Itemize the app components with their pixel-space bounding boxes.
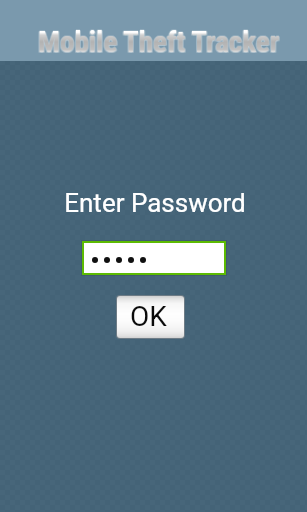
staticText: OK [130, 300, 167, 333]
staticText: Mobile Theft Tracker [39, 26, 281, 60]
staticText: Mobile Theft Tracker [37, 25, 279, 59]
staticText: Enter Password [64, 188, 246, 218]
staticText: Mobile Theft Tracker [39, 25, 281, 59]
staticText: Mobile Theft Tracker [37, 26, 279, 60]
staticText: Mobile Theft Tracker [38, 25, 280, 59]
staticText: Mobile Theft Tracker [38, 24, 280, 58]
staticText: Mobile Theft Tracker [38, 26, 280, 60]
button[interactable]: OK [116, 295, 185, 339]
button[interactable]: Password input field [81, 240, 227, 276]
